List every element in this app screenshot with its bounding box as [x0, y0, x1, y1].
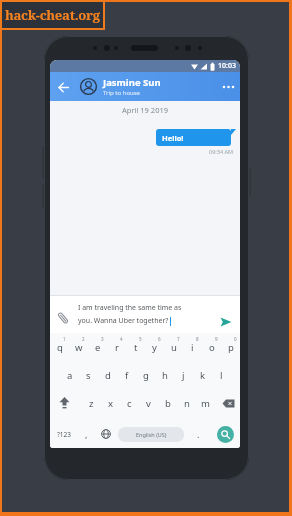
- staticText: 0: [234, 336, 237, 342]
- staticText: 2: [82, 336, 85, 342]
- button[interactable]: [218, 314, 234, 330]
- staticText: 7: [177, 336, 180, 342]
- staticText: v: [146, 397, 151, 410]
- button[interactable]: hack-cheat.org: [0, 0, 105, 30]
- staticText: q: [57, 341, 63, 354]
- staticText: 8: [196, 336, 199, 342]
- button[interactable]: I am traveling the same time as: [50, 295, 240, 333]
- button[interactable]: c: [120, 392, 139, 414]
- staticText: p: [228, 341, 234, 354]
- button[interactable]: [96, 423, 116, 445]
- button[interactable]: [218, 392, 239, 414]
- button[interactable]: s: [79, 364, 98, 386]
- button[interactable]: [55, 392, 74, 414]
- staticText: y: [152, 341, 157, 354]
- button[interactable]: v: [139, 392, 158, 414]
- staticText: n: [184, 397, 190, 410]
- staticText: 9: [215, 336, 218, 342]
- staticText: h: [162, 369, 168, 382]
- button[interactable]: x: [101, 392, 120, 414]
- button[interactable]: l: [212, 364, 231, 386]
- button[interactable]: n: [177, 392, 196, 414]
- staticText: 10:03: [218, 61, 236, 71]
- button[interactable]: k: [193, 364, 212, 386]
- button[interactable]: r: [107, 336, 126, 358]
- staticText: k: [200, 369, 206, 382]
- staticText: f: [125, 369, 129, 382]
- button[interactable]: ,: [78, 420, 94, 442]
- button[interactable]: Jasmine Sun: [103, 76, 218, 97]
- button[interactable]: [55, 79, 71, 95]
- button[interactable]: a: [60, 364, 79, 386]
- button[interactable]: z: [82, 392, 101, 414]
- staticText: j: [182, 369, 185, 382]
- button[interactable]: m: [196, 392, 215, 414]
- button[interactable]: i: [183, 336, 202, 358]
- staticText: 5: [139, 336, 142, 342]
- button[interactable]: f: [117, 364, 136, 386]
- staticText: Hello!: [162, 133, 184, 143]
- button[interactable]: u: [164, 336, 183, 358]
- button[interactable]: o: [202, 336, 221, 358]
- button[interactable]: ?123: [50, 423, 78, 445]
- button[interactable]: Hello!: [156, 129, 231, 146]
- staticText: April 19 2019: [122, 105, 169, 115]
- staticText: 4: [120, 336, 123, 342]
- button[interactable]: p: [221, 336, 240, 358]
- staticText: a: [67, 369, 73, 382]
- staticText: z: [89, 397, 94, 410]
- button[interactable]: [217, 426, 234, 443]
- staticText: l: [220, 369, 223, 382]
- staticText: English (US): [136, 431, 167, 438]
- staticText: i: [191, 341, 194, 354]
- button[interactable]: g: [136, 364, 155, 386]
- button[interactable]: English (US): [118, 427, 184, 442]
- staticText: o: [209, 341, 215, 354]
- staticText: s: [86, 369, 91, 382]
- button[interactable]: y: [145, 336, 164, 358]
- staticText: you. Wanna Uber together?: [78, 316, 169, 326]
- button[interactable]: w: [69, 336, 88, 358]
- staticText: t: [134, 341, 138, 354]
- button[interactable]: h: [155, 364, 174, 386]
- staticText: x: [108, 397, 114, 410]
- staticText: w: [75, 341, 83, 354]
- staticText: 3: [101, 336, 104, 342]
- staticText: 1: [63, 336, 66, 342]
- staticText: u: [171, 341, 177, 354]
- button[interactable]: e: [88, 336, 107, 358]
- staticText: 09:34 AM: [209, 148, 233, 155]
- button[interactable]: d: [98, 364, 117, 386]
- staticText: I am traveling the same time as: [78, 303, 182, 313]
- staticText: m: [201, 397, 210, 410]
- staticText: hack-cheat.org: [5, 6, 100, 24]
- button[interactable]: b: [158, 392, 177, 414]
- staticText: .: [197, 428, 200, 440]
- button[interactable]: [218, 77, 238, 97]
- staticText: d: [105, 369, 111, 382]
- staticText: b: [165, 397, 171, 410]
- staticText: Trip to house: [103, 89, 140, 97]
- staticText: ?123: [57, 430, 71, 439]
- button[interactable]: t: [126, 336, 145, 358]
- staticText: ,: [85, 428, 88, 440]
- staticText: e: [95, 341, 101, 354]
- staticText: r: [115, 341, 119, 354]
- button[interactable]: j: [174, 364, 193, 386]
- staticText: g: [143, 369, 149, 382]
- staticText: Jasmine Sun: [103, 76, 161, 89]
- button[interactable]: q: [50, 336, 69, 358]
- staticText: c: [127, 397, 132, 410]
- button[interactable]: [79, 77, 98, 96]
- staticText: 6: [158, 336, 161, 342]
- button[interactable]: .: [190, 420, 206, 442]
